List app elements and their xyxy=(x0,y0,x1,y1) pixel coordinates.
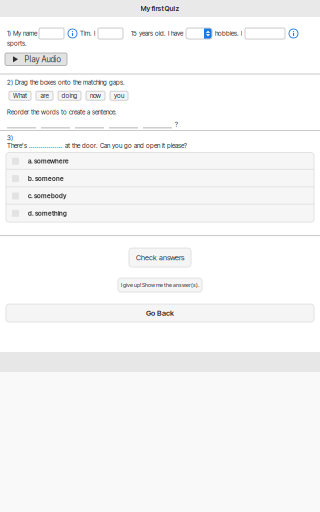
staticText: Play Audio xyxy=(24,54,60,64)
button[interactable]: Play Audio xyxy=(5,53,67,65)
staticText: you xyxy=(114,92,124,100)
staticText: c. somebody xyxy=(28,192,66,200)
staticText: ? xyxy=(175,121,178,128)
button[interactable]: I give up! Show me the answer(s). xyxy=(118,278,202,292)
staticText: I give up! Show me the answer(s). xyxy=(121,282,199,288)
staticText: 1) My name xyxy=(7,30,37,37)
staticText: There's ................. at the door. C… xyxy=(7,142,187,149)
staticText: a. somewhere xyxy=(28,157,69,165)
staticText: My first Quiz xyxy=(140,4,179,13)
staticText: Go Back xyxy=(146,309,174,317)
staticText: 3) xyxy=(7,134,13,142)
staticText: are xyxy=(40,92,48,100)
staticText: 15 years old. I have xyxy=(131,30,183,37)
staticText: Tim. I xyxy=(80,30,95,37)
button[interactable]: What xyxy=(9,91,31,100)
button[interactable]: doing xyxy=(58,91,81,100)
button[interactable]: Go Back xyxy=(6,304,314,322)
button[interactable]: now xyxy=(86,91,105,100)
staticText: hobbies. I xyxy=(215,30,242,37)
staticText: Reorder the words to create a sentence. xyxy=(7,108,117,116)
button[interactable]: d. something xyxy=(6,205,314,222)
staticText: d. something xyxy=(28,209,67,217)
button[interactable]: you xyxy=(110,91,128,100)
button[interactable]: b. someone xyxy=(6,170,314,187)
staticText: doing xyxy=(61,92,77,100)
button[interactable]: are xyxy=(36,91,53,100)
staticText: Check answers xyxy=(136,253,184,262)
button[interactable]: a. somewhere xyxy=(6,152,314,170)
staticText: b. someone xyxy=(28,175,64,182)
button[interactable]: Check answers xyxy=(129,248,191,267)
staticText: sports. xyxy=(7,40,27,47)
staticText: now xyxy=(90,92,101,100)
staticText: 2) Drag the boxes onto the matching gaps… xyxy=(7,78,125,86)
button[interactable]: c. somebody xyxy=(6,187,314,205)
staticText: What xyxy=(13,92,27,100)
